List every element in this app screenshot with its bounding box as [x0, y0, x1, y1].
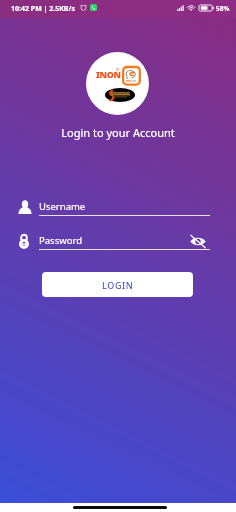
button[interactable]: Username — [0, 198, 236, 220]
button[interactable]: Toggle password visibility — [187, 230, 209, 252]
staticText: Login to your Account — [0, 125, 236, 140]
staticText: LOGIN — [102, 279, 134, 291]
staticText: 10:42 PM | 2.5KB/s — [11, 4, 75, 14]
staticText: Password — [39, 234, 82, 247]
staticText: 58% — [216, 4, 230, 13]
staticText: Username — [39, 200, 86, 213]
button[interactable]: Password — [0, 232, 236, 254]
staticText: INON — [96, 68, 121, 80]
button[interactable]: LOGIN — [42, 272, 193, 297]
